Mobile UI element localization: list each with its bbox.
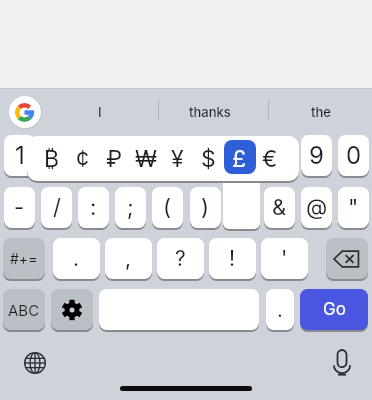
button[interactable]: " bbox=[338, 187, 369, 228]
button[interactable]: 9 bbox=[301, 135, 332, 176]
staticText: 9 bbox=[309, 141, 324, 170]
staticText: ; bbox=[127, 194, 134, 221]
button[interactable]: the bbox=[269, 96, 372, 128]
staticText: I bbox=[98, 104, 102, 120]
button[interactable]: ! bbox=[209, 238, 256, 279]
button[interactable] bbox=[13, 341, 57, 385]
staticText: ( bbox=[163, 194, 172, 221]
button[interactable]: $ bbox=[193, 138, 223, 180]
staticText: thanks bbox=[189, 104, 231, 120]
button[interactable]: - bbox=[4, 187, 35, 228]
staticText: ) bbox=[201, 194, 210, 221]
button[interactable]: £ bbox=[224, 138, 254, 180]
button[interactable]: ¥ bbox=[162, 138, 192, 180]
button[interactable] bbox=[51, 289, 93, 330]
button[interactable]: 0 bbox=[338, 135, 369, 176]
button[interactable]: thanks bbox=[159, 96, 260, 128]
staticText: @ bbox=[306, 194, 328, 221]
staticText: " bbox=[348, 194, 359, 221]
button[interactable]: Go bbox=[300, 289, 368, 330]
button[interactable]: & bbox=[264, 187, 295, 228]
button[interactable]: ' bbox=[261, 238, 308, 279]
staticText: ABC bbox=[8, 301, 40, 319]
staticText: ? bbox=[175, 246, 186, 271]
button[interactable]: ; bbox=[115, 187, 146, 228]
staticText: 1 bbox=[15, 141, 25, 170]
button[interactable] bbox=[326, 238, 368, 279]
button[interactable]: I bbox=[52, 96, 148, 128]
button[interactable] bbox=[99, 289, 259, 330]
staticText: - bbox=[14, 194, 25, 221]
button[interactable]: @ bbox=[301, 187, 332, 228]
staticText: Go bbox=[323, 299, 346, 320]
button[interactable] bbox=[9, 96, 41, 128]
staticText: € bbox=[262, 145, 278, 173]
button[interactable]: ¢ bbox=[68, 138, 98, 180]
button[interactable]: : bbox=[78, 187, 109, 228]
staticText: . bbox=[277, 298, 283, 322]
button[interactable]: ₿ bbox=[37, 138, 67, 180]
staticText: 0 bbox=[346, 141, 362, 170]
button[interactable]: . bbox=[53, 238, 100, 279]
button[interactable]: ) bbox=[190, 187, 221, 228]
button[interactable]: . bbox=[266, 289, 294, 330]
staticText: , bbox=[125, 246, 132, 271]
button[interactable]: ( bbox=[152, 187, 183, 228]
button[interactable]: ? bbox=[157, 238, 204, 279]
staticText: : bbox=[90, 194, 97, 221]
button[interactable]: 1 bbox=[4, 135, 35, 176]
staticText: ₩ bbox=[135, 145, 157, 173]
staticText: ! bbox=[229, 246, 236, 271]
button[interactable] bbox=[224, 140, 256, 174]
button[interactable]: #+= bbox=[3, 238, 45, 279]
button[interactable]: € bbox=[255, 138, 285, 180]
staticText: £ bbox=[232, 145, 247, 173]
staticText: ₽ bbox=[106, 145, 123, 173]
staticText: / bbox=[53, 194, 61, 221]
staticText: the bbox=[311, 104, 331, 120]
staticText: ' bbox=[281, 246, 288, 271]
button[interactable]: / bbox=[41, 187, 72, 228]
staticText: ¥ bbox=[171, 145, 184, 173]
staticText: . bbox=[73, 246, 80, 271]
staticText: ¢ bbox=[76, 145, 90, 173]
button[interactable]: ₽ bbox=[99, 138, 129, 180]
staticText: $ bbox=[201, 145, 216, 173]
staticText: ₿ bbox=[44, 145, 60, 173]
staticText: & bbox=[272, 194, 287, 221]
staticText: #+= bbox=[10, 250, 38, 267]
button[interactable] bbox=[319, 341, 363, 385]
button[interactable]: ABC bbox=[3, 289, 45, 330]
button[interactable]: ₩ bbox=[131, 138, 161, 180]
button[interactable]: , bbox=[105, 238, 152, 279]
